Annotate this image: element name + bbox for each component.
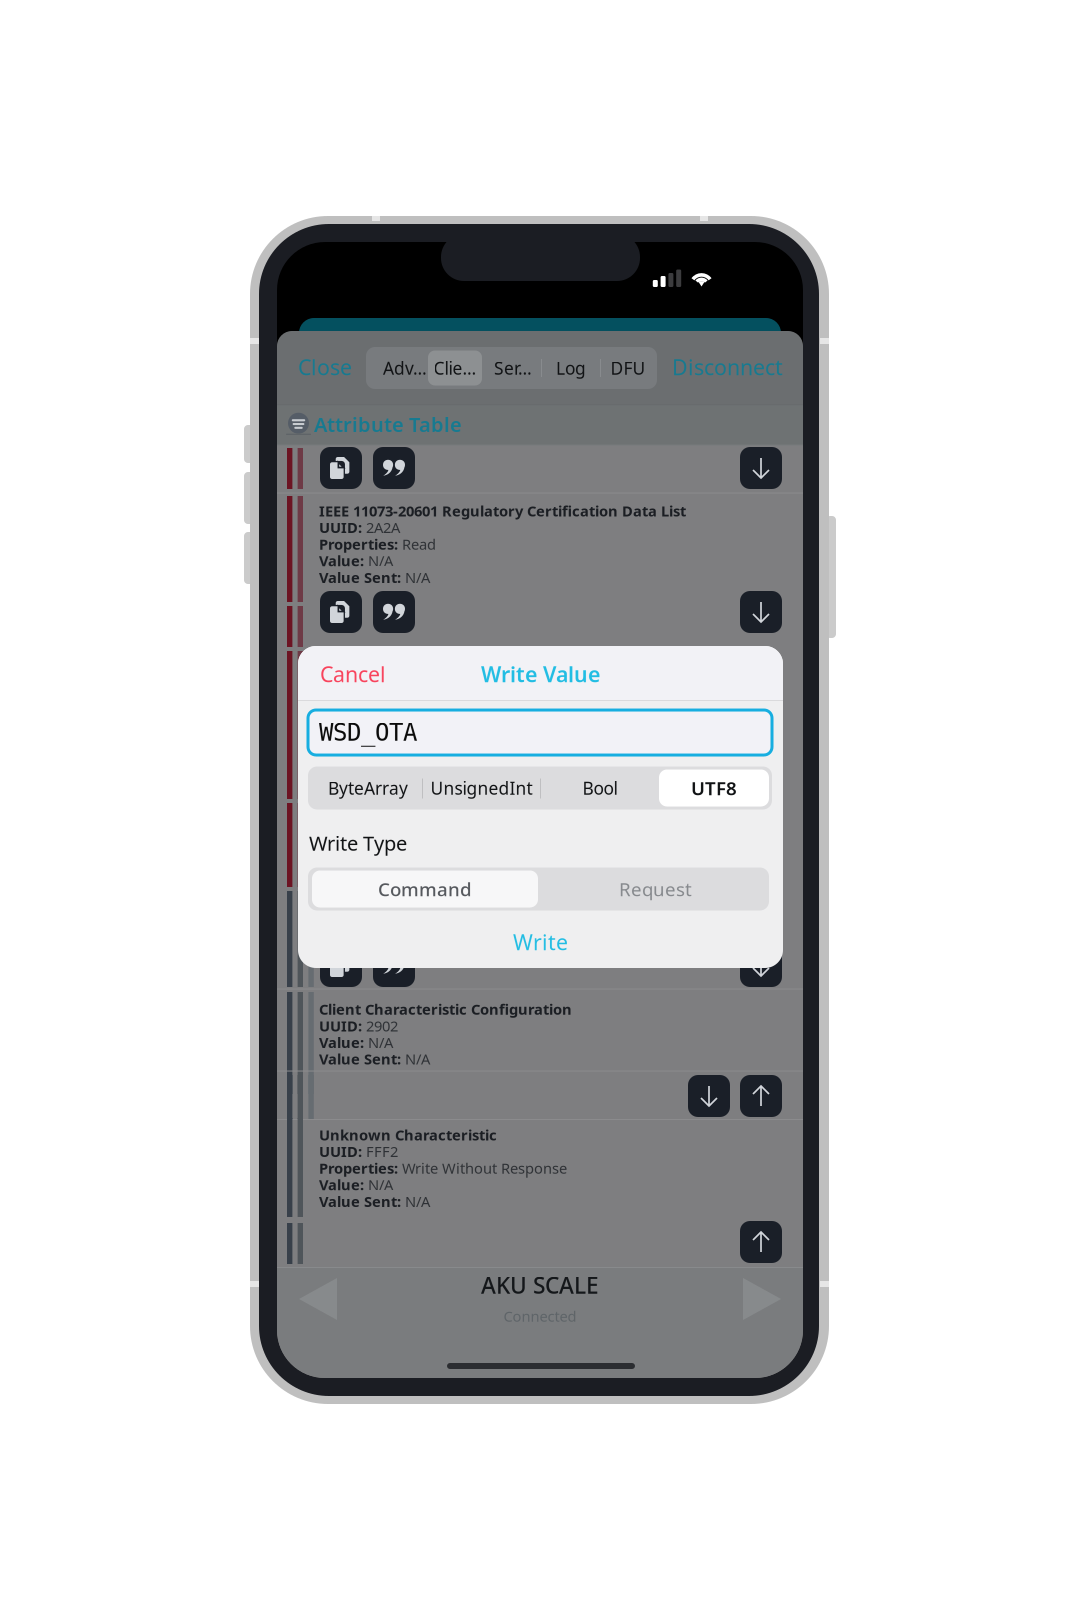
staticText: Bool	[582, 776, 617, 799]
button[interactable]: Bool	[541, 766, 659, 809]
staticText: N/A	[401, 1191, 430, 1211]
staticText: Attribute Table	[314, 411, 462, 438]
button[interactable]: Copy value	[320, 591, 362, 633]
staticText: WSD_OTA	[319, 719, 417, 746]
staticText: UTF8	[691, 776, 737, 800]
button[interactable]: Read value	[740, 447, 782, 489]
button[interactable]: Copy value	[320, 945, 362, 987]
staticText: Log	[556, 356, 586, 379]
staticText: Command	[378, 877, 472, 901]
staticText: Value:	[319, 1033, 364, 1052]
button[interactable]: Command	[312, 867, 538, 910]
staticText: Write Type	[309, 830, 407, 856]
staticText: UUID:	[319, 518, 362, 537]
staticText: Request	[619, 877, 692, 901]
button[interactable]: Close	[298, 351, 360, 383]
staticText: IEEE 11073-20601 Regulatory Certificatio…	[319, 501, 686, 521]
staticText: Properties:	[319, 1158, 398, 1178]
staticText: UUID:	[319, 1142, 362, 1161]
button[interactable]: Write value	[740, 1075, 782, 1117]
staticText: N/A	[364, 1033, 393, 1052]
staticText: Clie…	[433, 356, 476, 379]
staticText: Value Sent:	[319, 567, 401, 587]
button[interactable]: Adv…	[374, 347, 436, 389]
button[interactable]: Ser…	[485, 347, 541, 389]
button[interactable]: UnsignedInt	[424, 766, 539, 809]
staticText: Ser…	[494, 356, 532, 379]
staticText: DFU	[610, 356, 645, 379]
staticText: N/A	[364, 551, 393, 570]
staticText: Properties:	[319, 534, 398, 554]
staticText: Client Characteristic Configuration	[319, 999, 572, 1019]
staticText: FFF2	[362, 1142, 398, 1161]
button[interactable]: Cancel	[320, 660, 440, 688]
staticText: Connected	[503, 1306, 576, 1326]
button[interactable]: Write	[298, 929, 783, 955]
button[interactable]: DFU	[606, 347, 650, 389]
staticText: Write	[513, 928, 568, 956]
button[interactable]: Disconnect	[663, 351, 783, 383]
staticText: UnsignedInt	[430, 776, 532, 799]
staticText: Write Value	[481, 660, 600, 688]
staticText: N/A	[401, 1049, 430, 1069]
button[interactable]: Read value	[688, 1075, 730, 1117]
button[interactable]: Copy value	[320, 447, 362, 489]
staticText: UUID:	[319, 1016, 362, 1035]
button[interactable]: Log	[549, 347, 593, 389]
button[interactable]: Request	[542, 867, 769, 910]
button[interactable]: UTF8	[659, 766, 769, 809]
button[interactable]: Write value	[740, 1221, 782, 1263]
button[interactable]: Copy as text	[373, 945, 415, 987]
button[interactable]: ByteArray	[315, 766, 421, 809]
staticText: 2A2A	[362, 518, 400, 537]
staticText: N/A	[401, 567, 430, 587]
button[interactable]: Copy as text	[373, 447, 415, 489]
staticText: 2902	[362, 1016, 398, 1035]
staticText: Read	[398, 534, 436, 554]
staticText: Cancel	[320, 660, 386, 688]
staticText: AKU SCALE	[481, 1270, 599, 1300]
staticText: Close	[298, 353, 352, 381]
staticText: Adv…	[383, 356, 427, 379]
staticText: Unknown Characteristic	[319, 1125, 497, 1145]
staticText: Value Sent:	[319, 1049, 401, 1069]
staticText: Value:	[319, 1175, 364, 1194]
button[interactable]: Clie…	[432, 347, 478, 389]
button[interactable]: Read value	[740, 591, 782, 633]
staticText: Disconnect	[672, 353, 783, 381]
staticText: Value:	[319, 551, 364, 570]
button[interactable]: Read value	[740, 945, 782, 987]
staticText: Write Without Response	[398, 1158, 567, 1178]
button[interactable]: Copy as text	[373, 591, 415, 633]
staticText: ByteArray	[328, 776, 408, 799]
staticText: N/A	[364, 1175, 393, 1194]
staticText: Value Sent:	[319, 1191, 401, 1211]
